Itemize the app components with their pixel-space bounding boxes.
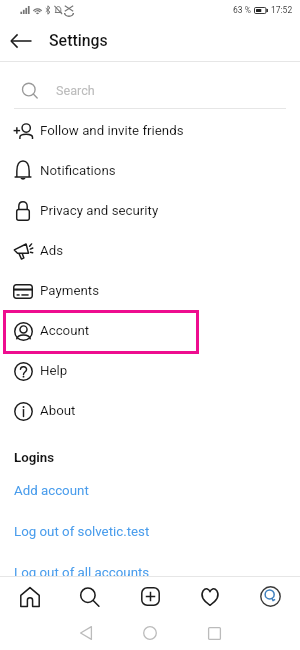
button[interactable]: Log out of all accounts: [0, 565, 300, 576]
button[interactable]: About: [0, 391, 300, 431]
staticText: Follow and invite friends: [40, 123, 184, 139]
staticText: Logins: [14, 450, 55, 466]
staticText: Add account: [14, 483, 89, 499]
staticText: Notifications: [40, 163, 116, 179]
button[interactable]: New post: [120, 577, 180, 616]
staticText: Help: [40, 363, 68, 379]
staticText: Settings: [49, 31, 108, 50]
button[interactable]: Search: [0, 62, 300, 109]
button[interactable]: Home: [0, 577, 60, 616]
button[interactable]: Recent apps: [182, 616, 246, 650]
button[interactable]: Follow and invite friends: [0, 111, 300, 151]
button[interactable]: Search: [60, 577, 120, 616]
button[interactable]: Privacy and security: [0, 191, 300, 231]
button[interactable]: Add account: [0, 483, 300, 499]
button[interactable]: Profile: [240, 577, 300, 616]
staticText: Ads: [40, 243, 64, 259]
staticText: Account: [40, 323, 90, 339]
staticText: Payments: [40, 283, 100, 299]
staticText: Log out of all accounts: [14, 565, 150, 576]
button[interactable]: Back: [4, 24, 37, 57]
button[interactable]: Payments: [0, 271, 300, 311]
button[interactable]: Help: [0, 351, 300, 391]
staticText: About: [40, 403, 76, 419]
button[interactable]: Ads: [0, 231, 300, 271]
button[interactable]: Account: [0, 311, 300, 351]
staticText: Search: [56, 83, 95, 98]
button[interactable]: Back: [54, 616, 118, 650]
staticText: 63 %: [233, 5, 251, 15]
button[interactable]: Activity: [180, 577, 240, 616]
staticText: Privacy and security: [40, 203, 159, 219]
button[interactable]: Home: [118, 616, 182, 650]
staticText: 17:52: [271, 5, 293, 15]
button[interactable]: Notifications: [0, 151, 300, 191]
button[interactable]: Log out of solvetic.test: [0, 524, 300, 540]
staticText: Log out of solvetic.test: [14, 524, 150, 540]
